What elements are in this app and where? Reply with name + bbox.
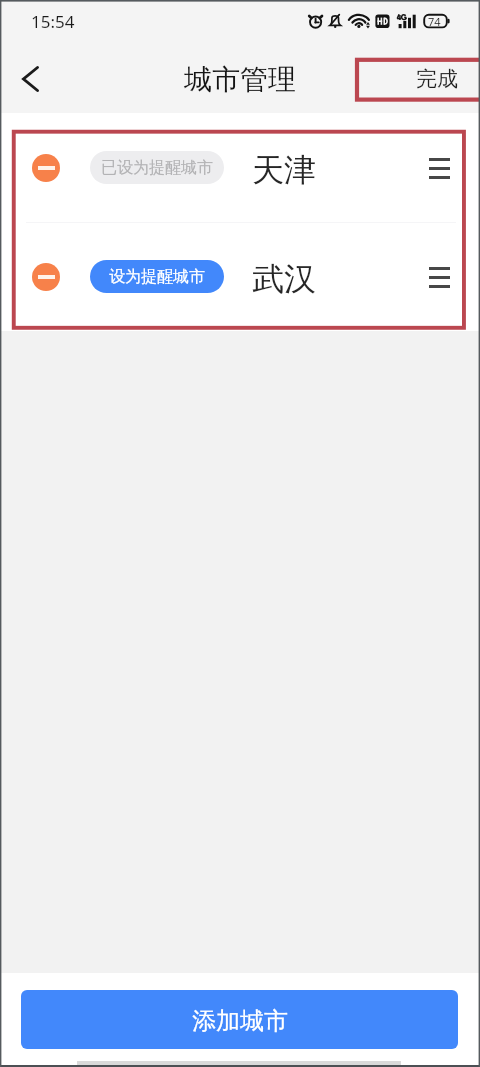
button[interactable]: Remove city (0, 113, 480, 222)
staticText: 添加城市 (192, 1006, 288, 1036)
button[interactable]: Reorder city (416, 145, 462, 191)
staticText: 城市管理 (184, 62, 296, 97)
button[interactable]: 添加城市 (21, 990, 458, 1049)
staticText: 天津 (252, 150, 316, 190)
button[interactable]: 设为提醒城市 (90, 260, 224, 293)
button[interactable]: 完成 (396, 45, 480, 113)
button[interactable]: Reorder city (416, 254, 462, 300)
staticText: 74 (428, 14, 441, 29)
staticText: 完成 (416, 66, 458, 92)
button[interactable]: Remove city (32, 263, 60, 291)
button[interactable]: 已设为提醒城市 (90, 151, 224, 184)
button[interactable]: Back (3, 52, 57, 106)
button[interactable]: Remove city (0, 222, 480, 331)
staticText: 已设为提醒城市 (101, 158, 213, 178)
staticText: 武汉 (252, 259, 316, 299)
staticText: 设为提醒城市 (109, 267, 205, 287)
button[interactable]: Remove city (32, 154, 60, 182)
staticText: 15:54 (31, 10, 75, 33)
